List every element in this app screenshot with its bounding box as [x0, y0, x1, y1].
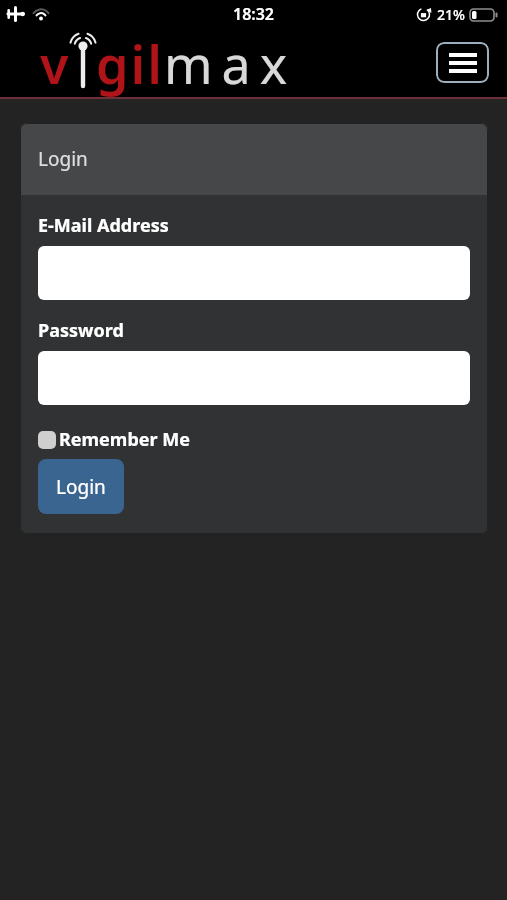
staticText: E-Mail Address — [38, 213, 169, 238]
staticText: v — [40, 28, 70, 97]
staticText: Login — [38, 146, 88, 172]
button[interactable] — [38, 246, 470, 300]
staticText: max — [164, 28, 297, 97]
staticText: gil — [96, 28, 164, 97]
staticText: 18:32 — [233, 3, 275, 25]
button[interactable]: Remember Me — [38, 427, 190, 452]
button[interactable] — [38, 351, 470, 405]
staticText: Login — [56, 474, 106, 500]
button[interactable]: Login — [38, 459, 124, 514]
staticText: Password — [38, 318, 124, 343]
button[interactable] — [436, 42, 489, 83]
staticText: Remember Me — [59, 427, 190, 452]
staticText: 21% — [437, 5, 465, 24]
